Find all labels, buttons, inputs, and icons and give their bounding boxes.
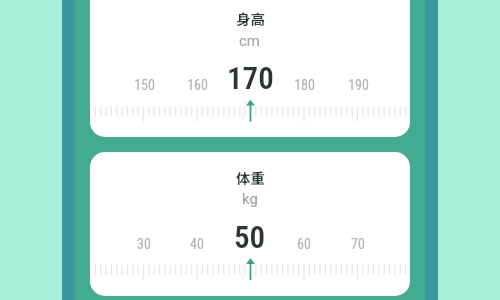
staticText: 160 bbox=[187, 77, 208, 93]
staticText: cm bbox=[239, 32, 261, 50]
staticText: kg bbox=[242, 190, 258, 208]
staticText: 身高 bbox=[236, 8, 265, 29]
staticText: 体重 bbox=[236, 167, 265, 188]
staticText: 40 bbox=[190, 236, 204, 252]
staticText: 30 bbox=[137, 236, 151, 252]
button[interactable]: 身高 bbox=[90, 0, 410, 137]
staticText: 180 bbox=[294, 77, 315, 93]
staticText: 70 bbox=[351, 236, 365, 252]
staticText: 150 bbox=[134, 77, 155, 93]
staticText: 60 bbox=[297, 236, 311, 252]
staticText: 50 bbox=[234, 219, 266, 255]
staticText: 170 bbox=[227, 60, 274, 96]
staticText: 190 bbox=[348, 77, 369, 93]
button[interactable]: 体重 bbox=[90, 152, 410, 296]
